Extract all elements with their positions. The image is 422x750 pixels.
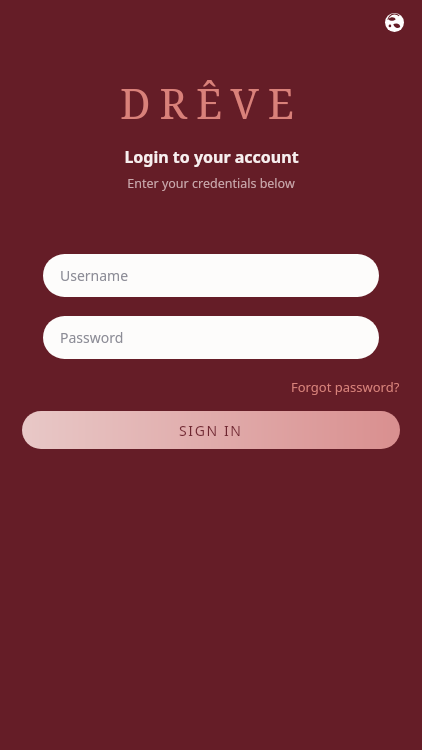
staticText: Login to your account	[124, 146, 299, 168]
staticText: Password	[60, 328, 124, 347]
button[interactable]: Change language	[378, 6, 410, 38]
button[interactable]: Username	[43, 254, 379, 297]
staticText: DRÊVE	[120, 74, 303, 131]
staticText: Username	[60, 266, 129, 285]
staticText: Enter your credentials below	[127, 175, 295, 192]
staticText: Forgot password?	[291, 378, 400, 396]
staticText: SIGN IN	[179, 421, 243, 440]
button[interactable]: Forgot password?	[289, 375, 402, 399]
button[interactable]: SIGN IN	[22, 411, 400, 449]
button[interactable]: Password	[43, 316, 379, 359]
